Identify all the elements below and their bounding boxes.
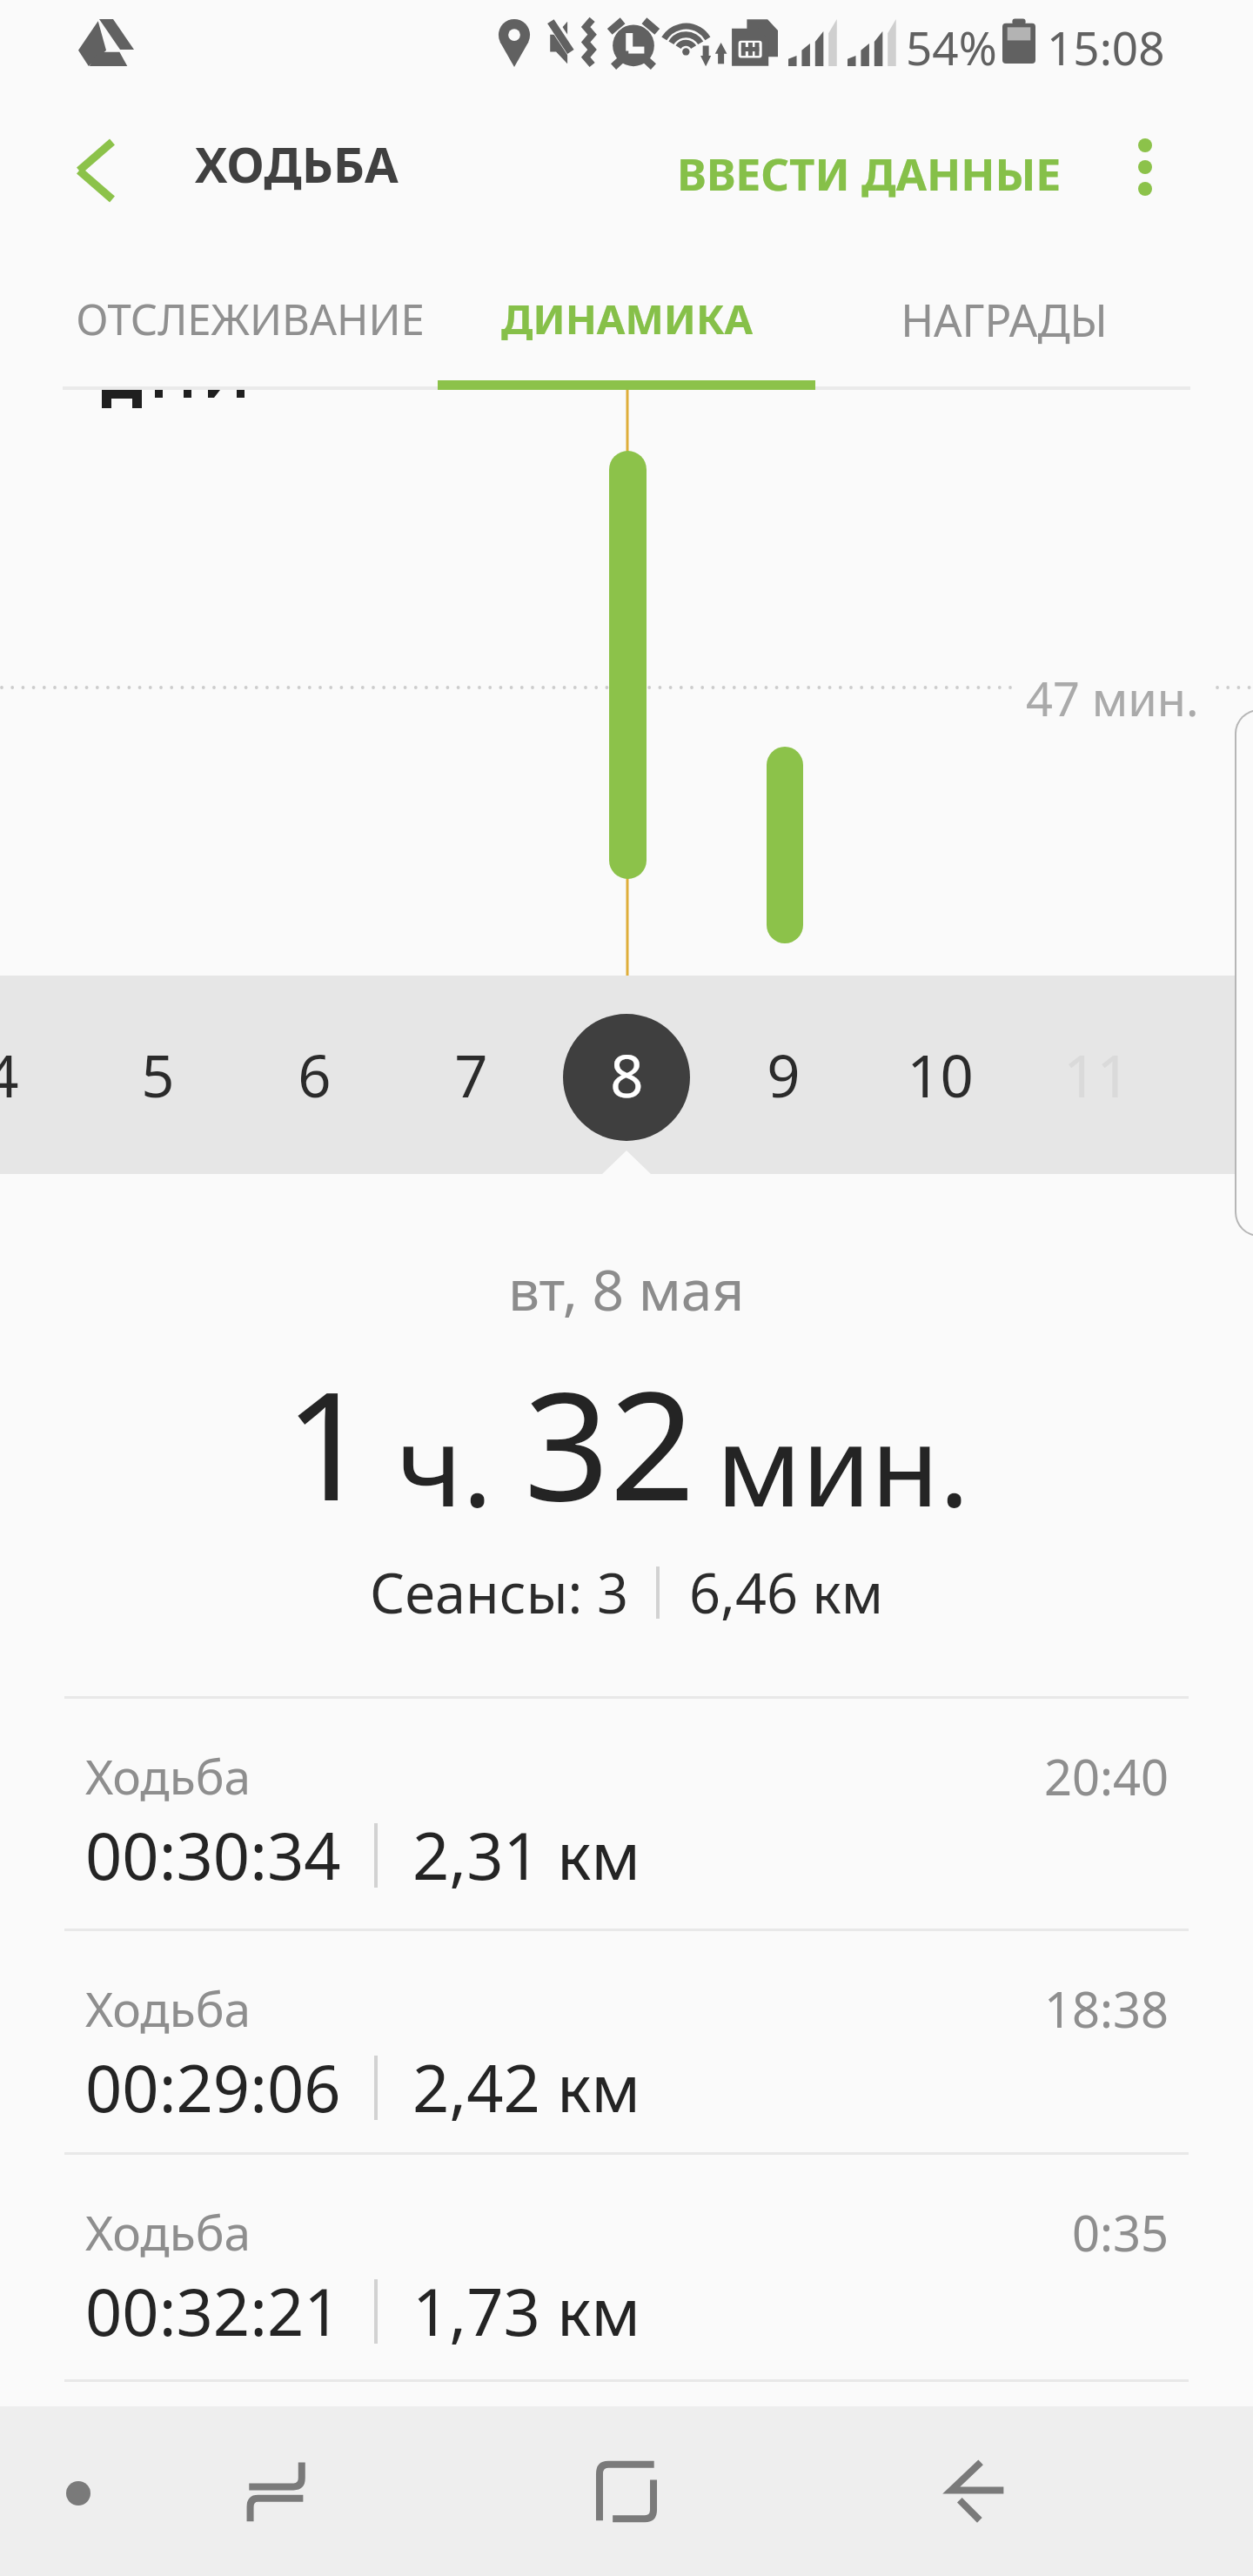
staticText: Ходьба xyxy=(85,2199,251,2264)
staticText: ДИНАМИКА xyxy=(501,291,753,346)
button[interactable]: 8 xyxy=(566,1008,687,1140)
staticText: 0:35 xyxy=(1072,2199,1169,2265)
staticText: Ходьба xyxy=(85,1743,251,1808)
button[interactable]: 5 xyxy=(97,1008,218,1140)
button[interactable]: 6 xyxy=(253,1008,375,1140)
button[interactable]: Back xyxy=(54,129,137,212)
staticText: 1 xyxy=(285,1340,371,1544)
button[interactable]: ДИНАМИКА xyxy=(439,247,815,390)
button[interactable]: ОТСЛЕЖИВАНИЕ xyxy=(61,247,439,390)
staticText: 20:40 xyxy=(1044,1743,1169,1809)
button[interactable]: 4 xyxy=(0,1008,63,1140)
button[interactable]: 1 xyxy=(1192,1008,1253,1140)
button[interactable]: Ходьба xyxy=(0,1699,1253,1929)
staticText: ХОДЬБА xyxy=(195,131,399,197)
staticText: 1 xyxy=(1236,1035,1253,1114)
staticText: 7 xyxy=(454,1035,488,1114)
staticText: 10 xyxy=(907,1035,974,1114)
staticText: 00:32:21 xyxy=(85,2267,341,2355)
staticText: 47 мин. xyxy=(1026,666,1199,730)
button[interactable]: Ходьба xyxy=(0,1931,1253,2152)
staticText: 9 xyxy=(767,1035,801,1114)
staticText: 00:30:34 xyxy=(85,1811,341,1899)
staticText: 6 xyxy=(298,1035,332,1114)
staticText: 32 xyxy=(524,1340,695,1544)
staticText: мин. xyxy=(716,1387,969,1539)
button[interactable]: НАГРАДЫ xyxy=(815,247,1192,390)
staticText: 11 xyxy=(1063,1035,1130,1114)
staticText: Ходьба xyxy=(85,1976,251,2041)
staticText: 4 xyxy=(0,1035,19,1114)
button[interactable] xyxy=(563,1014,690,1141)
staticText: 00:29:06 xyxy=(85,2043,341,2131)
staticText: НАГРАДЫ xyxy=(901,289,1108,349)
staticText: Сеансы: 3 xyxy=(370,1555,628,1630)
staticText: ч. xyxy=(397,1387,492,1539)
staticText: вт, 8 мая xyxy=(508,1251,745,1327)
staticText: 18:38 xyxy=(1044,1976,1169,2042)
staticText: 2,42 км xyxy=(412,2043,641,2131)
staticText: 8 xyxy=(610,1035,644,1114)
button[interactable]: Back xyxy=(922,2438,1030,2546)
staticText: 2,31 км xyxy=(412,1811,641,1899)
staticText: 5 xyxy=(141,1035,175,1114)
staticText: 15:08 xyxy=(1047,16,1165,78)
button[interactable]: More options xyxy=(1098,120,1192,214)
button[interactable]: Ходьба xyxy=(0,2155,1253,2379)
staticText: 1,73 км xyxy=(412,2267,641,2355)
button[interactable]: 10 xyxy=(879,1008,1001,1140)
staticText: 6,46 км xyxy=(689,1555,884,1630)
button[interactable]: Recent apps xyxy=(222,2438,330,2546)
button[interactable]: 7 xyxy=(410,1008,532,1140)
button[interactable]: ВВЕСТИ ДАННЫЕ xyxy=(677,143,1061,203)
staticText: 54% xyxy=(906,16,997,78)
staticText: ВВЕСТИ ДАННЫЕ xyxy=(677,143,1061,203)
button[interactable]: Home xyxy=(573,2438,680,2546)
staticText: ОТСЛЕЖИВАНИЕ xyxy=(76,290,425,348)
button[interactable]: 9 xyxy=(722,1008,844,1140)
